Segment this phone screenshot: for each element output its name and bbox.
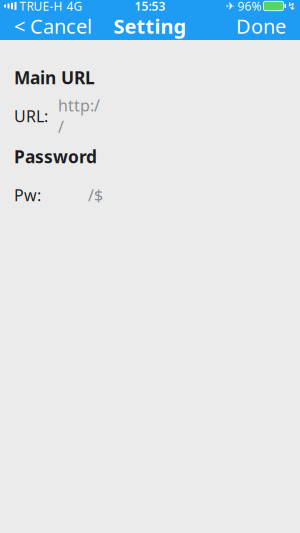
button[interactable]: Done xyxy=(230,10,292,42)
staticText: Done xyxy=(236,13,286,39)
staticText: Pw: xyxy=(14,184,41,206)
staticText: ↯ xyxy=(287,0,296,12)
staticText: ✈ xyxy=(225,0,234,12)
staticText: Main URL xyxy=(14,66,95,89)
staticText: 96% xyxy=(237,0,261,14)
staticText: 15:53 xyxy=(134,0,165,14)
button[interactable]: < Cancel xyxy=(8,10,98,42)
staticText: /$ xyxy=(88,184,103,206)
staticText: Password xyxy=(14,145,97,168)
staticText: TRUE-H xyxy=(19,0,62,14)
staticText: URL: xyxy=(14,105,48,127)
staticText: Setting xyxy=(113,13,186,39)
staticText: 4G xyxy=(66,0,82,14)
staticText: < Cancel xyxy=(14,13,92,39)
staticText: http:// xyxy=(58,95,100,137)
